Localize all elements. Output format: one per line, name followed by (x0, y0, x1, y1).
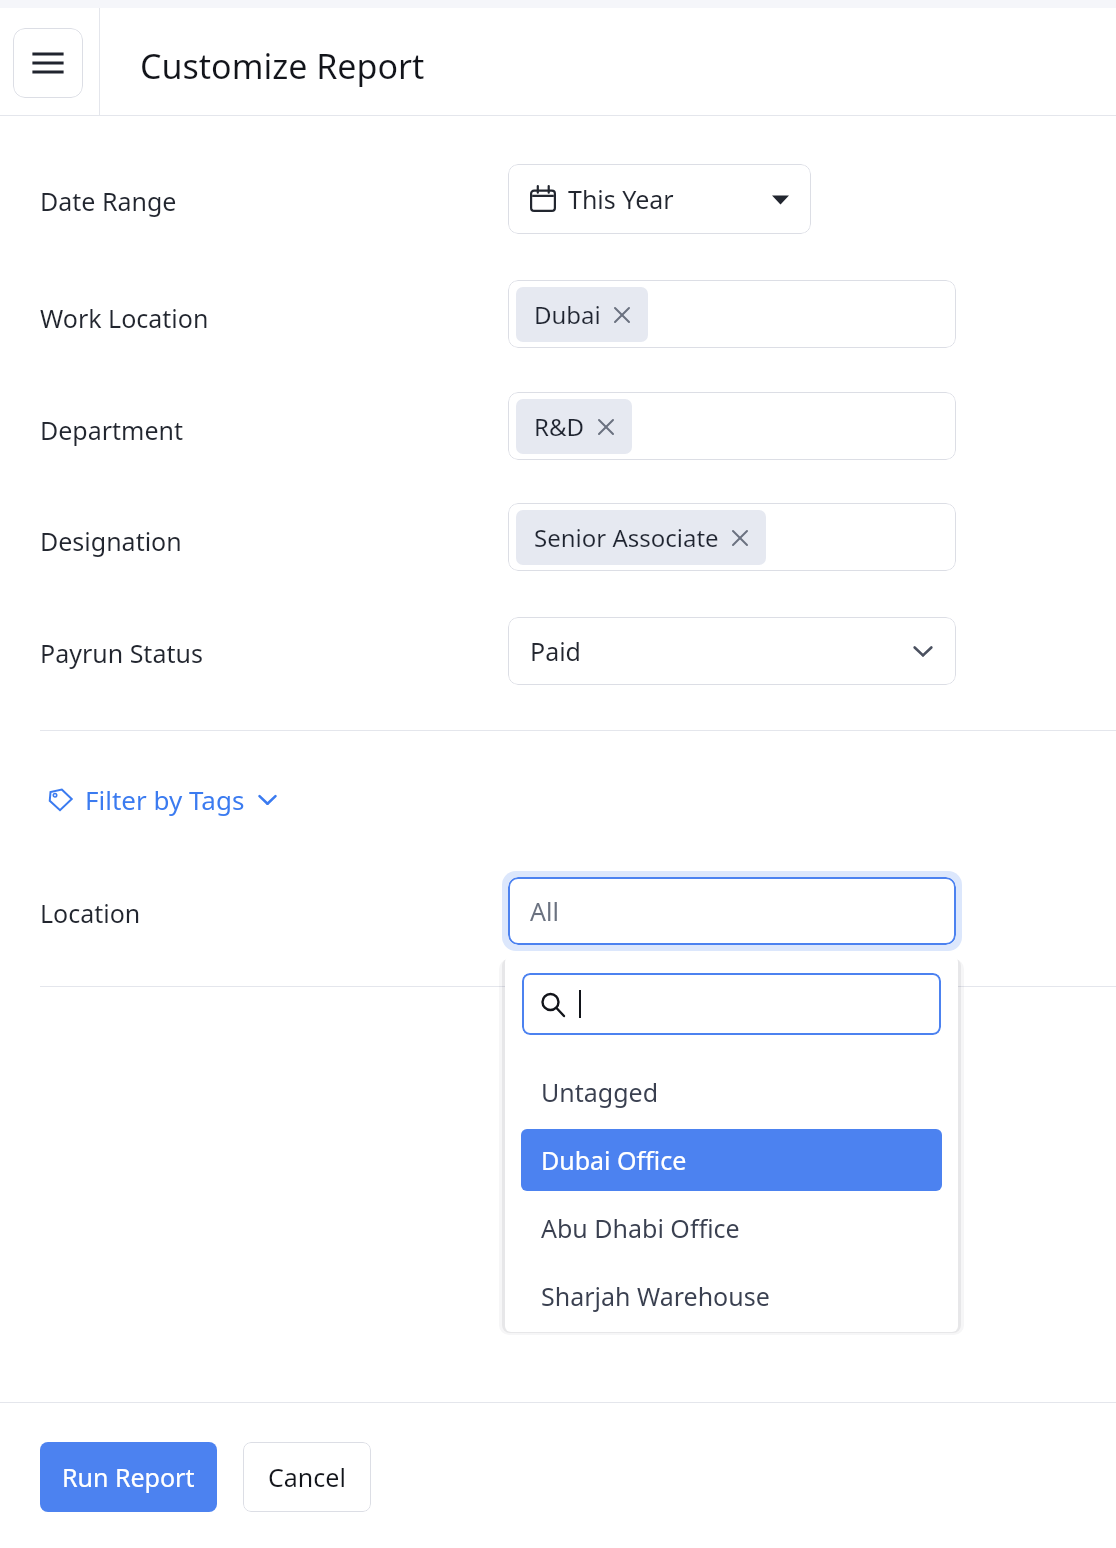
staticText: Dubai (534, 298, 601, 331)
staticText: Designation (40, 524, 182, 558)
staticText: Payrun Status (40, 636, 203, 670)
staticText: Work Location (40, 301, 209, 335)
button[interactable]: Work Location (508, 280, 956, 348)
staticText: Location (40, 896, 141, 930)
button[interactable]: Abu Dhabi Office (521, 1197, 942, 1259)
staticText: This Year (568, 182, 674, 216)
button[interactable]: Designation (508, 503, 956, 571)
staticText: Date Range (40, 184, 177, 218)
button[interactable]: This Year (508, 164, 811, 234)
button[interactable]: Menu (13, 28, 83, 98)
staticText: R&D (534, 410, 585, 443)
button[interactable]: Filter by Tags (40, 776, 286, 823)
button[interactable]: Dubai Office (521, 1129, 942, 1191)
staticText: Filter by Tags (85, 782, 245, 817)
staticText: Cancel (268, 1460, 346, 1494)
staticText: All (530, 894, 559, 928)
button[interactable]: Senior Associate (516, 510, 766, 565)
staticText: Senior Associate (534, 521, 719, 554)
staticText: Run Report (62, 1460, 195, 1494)
staticText: Dubai Office (541, 1143, 687, 1177)
staticText: Untagged (541, 1075, 659, 1109)
button[interactable]: Search tags (522, 973, 941, 1035)
button[interactable]: Location tag filter (508, 877, 956, 945)
button[interactable]: Cancel (243, 1442, 371, 1512)
staticText: Customize Report (140, 43, 425, 89)
staticText: Sharjah Warehouse (541, 1279, 770, 1313)
button[interactable]: Payrun Status: Paid (508, 617, 956, 685)
button[interactable]: Sharjah Warehouse (521, 1265, 942, 1327)
button[interactable]: Untagged (521, 1061, 942, 1123)
staticText: Abu Dhabi Office (541, 1211, 740, 1245)
staticText: Department (40, 413, 184, 447)
button[interactable]: Dubai (516, 287, 648, 342)
button[interactable]: Department (508, 392, 956, 460)
button[interactable]: R&D (516, 399, 632, 454)
button[interactable]: Run Report (40, 1442, 217, 1512)
staticText: Paid (530, 634, 581, 668)
